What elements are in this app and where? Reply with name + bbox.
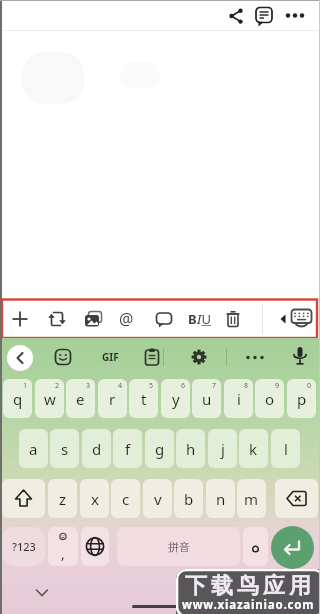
button[interactable]: [141, 346, 163, 368]
button[interactable]: b: [174, 479, 203, 518]
button[interactable]: ,: [48, 527, 78, 566]
button[interactable]: [253, 4, 276, 28]
staticText: t: [141, 389, 147, 409]
staticText: i: [237, 389, 241, 409]
staticText: g: [155, 439, 165, 459]
button[interactable]: [188, 346, 210, 368]
button[interactable]: [243, 527, 268, 566]
button[interactable]: [244, 346, 266, 368]
button[interactable]: s: [50, 429, 79, 468]
staticText: w: [44, 389, 56, 409]
staticText: y: [172, 389, 180, 409]
button[interactable]: y: [161, 379, 190, 418]
button[interactable]: BIU: [184, 307, 214, 331]
staticText: x: [91, 489, 99, 509]
staticText: r: [109, 389, 116, 409]
button[interactable]: v: [143, 479, 172, 518]
staticText: 9: [275, 381, 280, 391]
staticText: e: [76, 389, 85, 409]
staticText: 0: [307, 381, 312, 391]
staticText: 6: [181, 381, 186, 391]
staticText: d: [92, 439, 102, 459]
button[interactable]: [152, 307, 176, 331]
staticText: j: [221, 439, 225, 459]
button[interactable]: [221, 307, 245, 331]
button[interactable]: [81, 527, 109, 566]
button[interactable]: [276, 310, 290, 328]
button[interactable]: h: [176, 429, 205, 468]
staticText: 4: [118, 381, 123, 391]
button[interactable]: z: [48, 479, 77, 518]
staticText: 拼音: [168, 540, 190, 554]
button[interactable]: [81, 307, 105, 331]
staticText: @: [119, 308, 134, 330]
button[interactable]: j: [208, 429, 237, 468]
staticText: 1: [23, 381, 28, 391]
staticText: 8: [244, 381, 249, 391]
button[interactable]: i: [224, 379, 253, 418]
staticText: b: [184, 489, 194, 509]
button[interactable]: g: [145, 429, 174, 468]
staticText: k: [249, 439, 258, 459]
button[interactable]: p: [287, 379, 316, 418]
staticText: 7: [212, 381, 217, 391]
button[interactable]: [289, 306, 315, 334]
staticText: a: [29, 439, 38, 459]
staticText: 3: [86, 381, 91, 391]
button[interactable]: [226, 5, 247, 27]
staticText: 5: [149, 381, 154, 391]
button[interactable]: c: [111, 479, 140, 518]
button[interactable]: @: [114, 307, 138, 331]
button[interactable]: [271, 526, 314, 569]
staticText: ?123: [12, 539, 36, 554]
staticText: c: [122, 489, 130, 509]
button[interactable]: w: [35, 379, 64, 418]
button[interactable]: [52, 346, 74, 368]
button[interactable]: [8, 307, 32, 331]
button[interactable]: d: [82, 429, 111, 468]
staticText: z: [59, 489, 67, 509]
staticText: u: [202, 389, 212, 409]
staticText: o: [265, 389, 275, 409]
button[interactable]: q: [3, 379, 32, 418]
staticText: h: [186, 439, 196, 459]
staticText: v: [154, 489, 162, 509]
button[interactable]: r: [98, 379, 127, 418]
button[interactable]: m: [237, 479, 266, 518]
staticText: q: [13, 389, 23, 409]
button[interactable]: n: [206, 479, 235, 518]
button[interactable]: o: [255, 379, 284, 418]
button[interactable]: [289, 344, 311, 370]
button[interactable]: [45, 307, 69, 331]
staticText: ,: [61, 544, 65, 563]
button[interactable]: l: [271, 429, 300, 468]
staticText: f: [125, 439, 131, 459]
button[interactable]: a: [19, 429, 48, 468]
staticText: n: [216, 489, 226, 509]
button[interactable]: 拼音: [117, 527, 240, 566]
staticText: p: [297, 389, 307, 409]
button[interactable]: k: [239, 429, 268, 468]
button[interactable]: f: [113, 429, 142, 468]
staticText: m: [244, 489, 259, 509]
button[interactable]: [7, 345, 33, 371]
button[interactable]: GIF: [96, 346, 124, 368]
staticText: 下载鸟应用: [183, 572, 313, 600]
button[interactable]: x: [80, 479, 109, 518]
button[interactable]: [275, 479, 318, 518]
button[interactable]: t: [129, 379, 158, 418]
staticText: l: [284, 439, 288, 459]
button[interactable]: [283, 6, 309, 26]
staticText: BIU: [188, 310, 211, 328]
staticText: GIF: [102, 350, 119, 364]
staticText: www.xiazainiao.com: [182, 597, 315, 613]
button[interactable]: e: [66, 379, 95, 418]
staticText: 2: [55, 381, 60, 391]
button[interactable]: ?123: [2, 527, 45, 566]
button[interactable]: u: [192, 379, 221, 418]
button[interactable]: [2, 479, 45, 518]
staticText: s: [61, 439, 69, 459]
button[interactable]: [34, 587, 50, 599]
